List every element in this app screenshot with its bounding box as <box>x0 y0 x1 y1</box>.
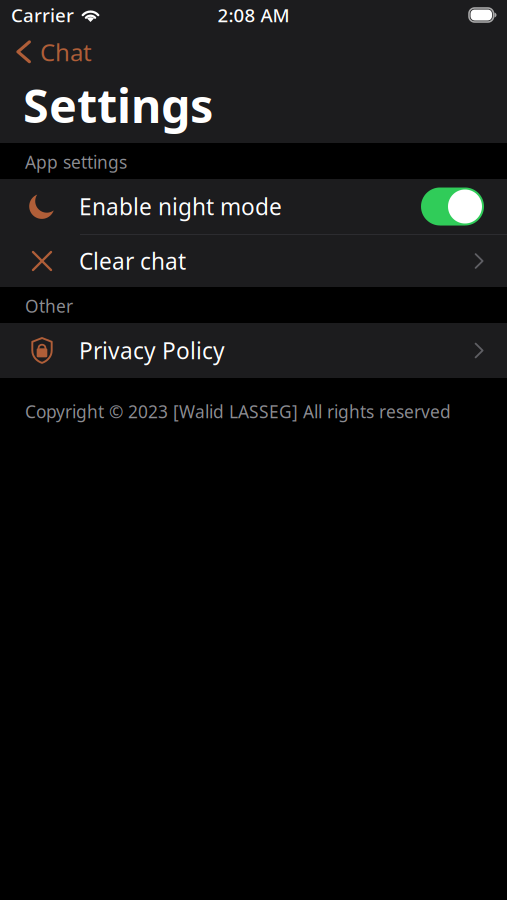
staticText: Copyright © 2023 [Walid LASSEG] All righ… <box>25 400 451 423</box>
staticText: Enable night mode <box>79 191 282 221</box>
button[interactable]: Clear chat <box>0 235 507 287</box>
staticText: App settings <box>25 150 127 173</box>
button[interactable]: Privacy Policy <box>0 323 507 378</box>
staticText: Carrier <box>11 3 74 27</box>
staticText: Privacy Policy <box>79 335 225 365</box>
staticText: Chat <box>40 36 92 68</box>
staticText: Other <box>25 294 73 317</box>
button[interactable]: Chat <box>0 35 104 69</box>
staticText: Settings <box>23 74 213 136</box>
staticText: 2:08 AM <box>217 3 289 27</box>
button[interactable]: Enable night mode <box>0 179 507 235</box>
staticText: Clear chat <box>79 246 186 276</box>
